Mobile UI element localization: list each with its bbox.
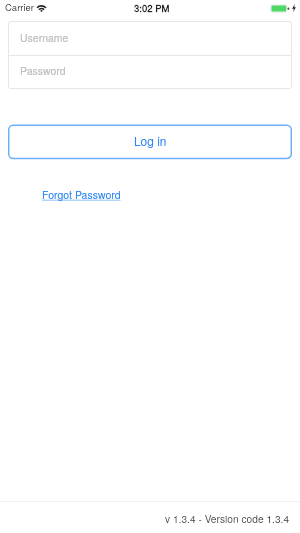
other: Battery full, charging (271, 5, 289, 12)
staticText: Carrier (5, 0, 35, 14)
staticText: Forgot Password (42, 187, 121, 202)
other: Wi-Fi signal (37, 5, 46, 12)
staticText: Username (20, 30, 69, 45)
staticText: Log in (134, 132, 167, 149)
button[interactable]: Username (8, 21, 292, 55)
staticText: 3:02 PM (134, 1, 170, 15)
button[interactable]: Password (8, 56, 292, 89)
staticText: Password (20, 63, 66, 78)
button[interactable]: Forgot Password (42, 187, 121, 202)
staticText: v 1.3.4 - Version code 1.3.4 (165, 511, 290, 526)
button[interactable]: Log in (8, 125, 292, 159)
